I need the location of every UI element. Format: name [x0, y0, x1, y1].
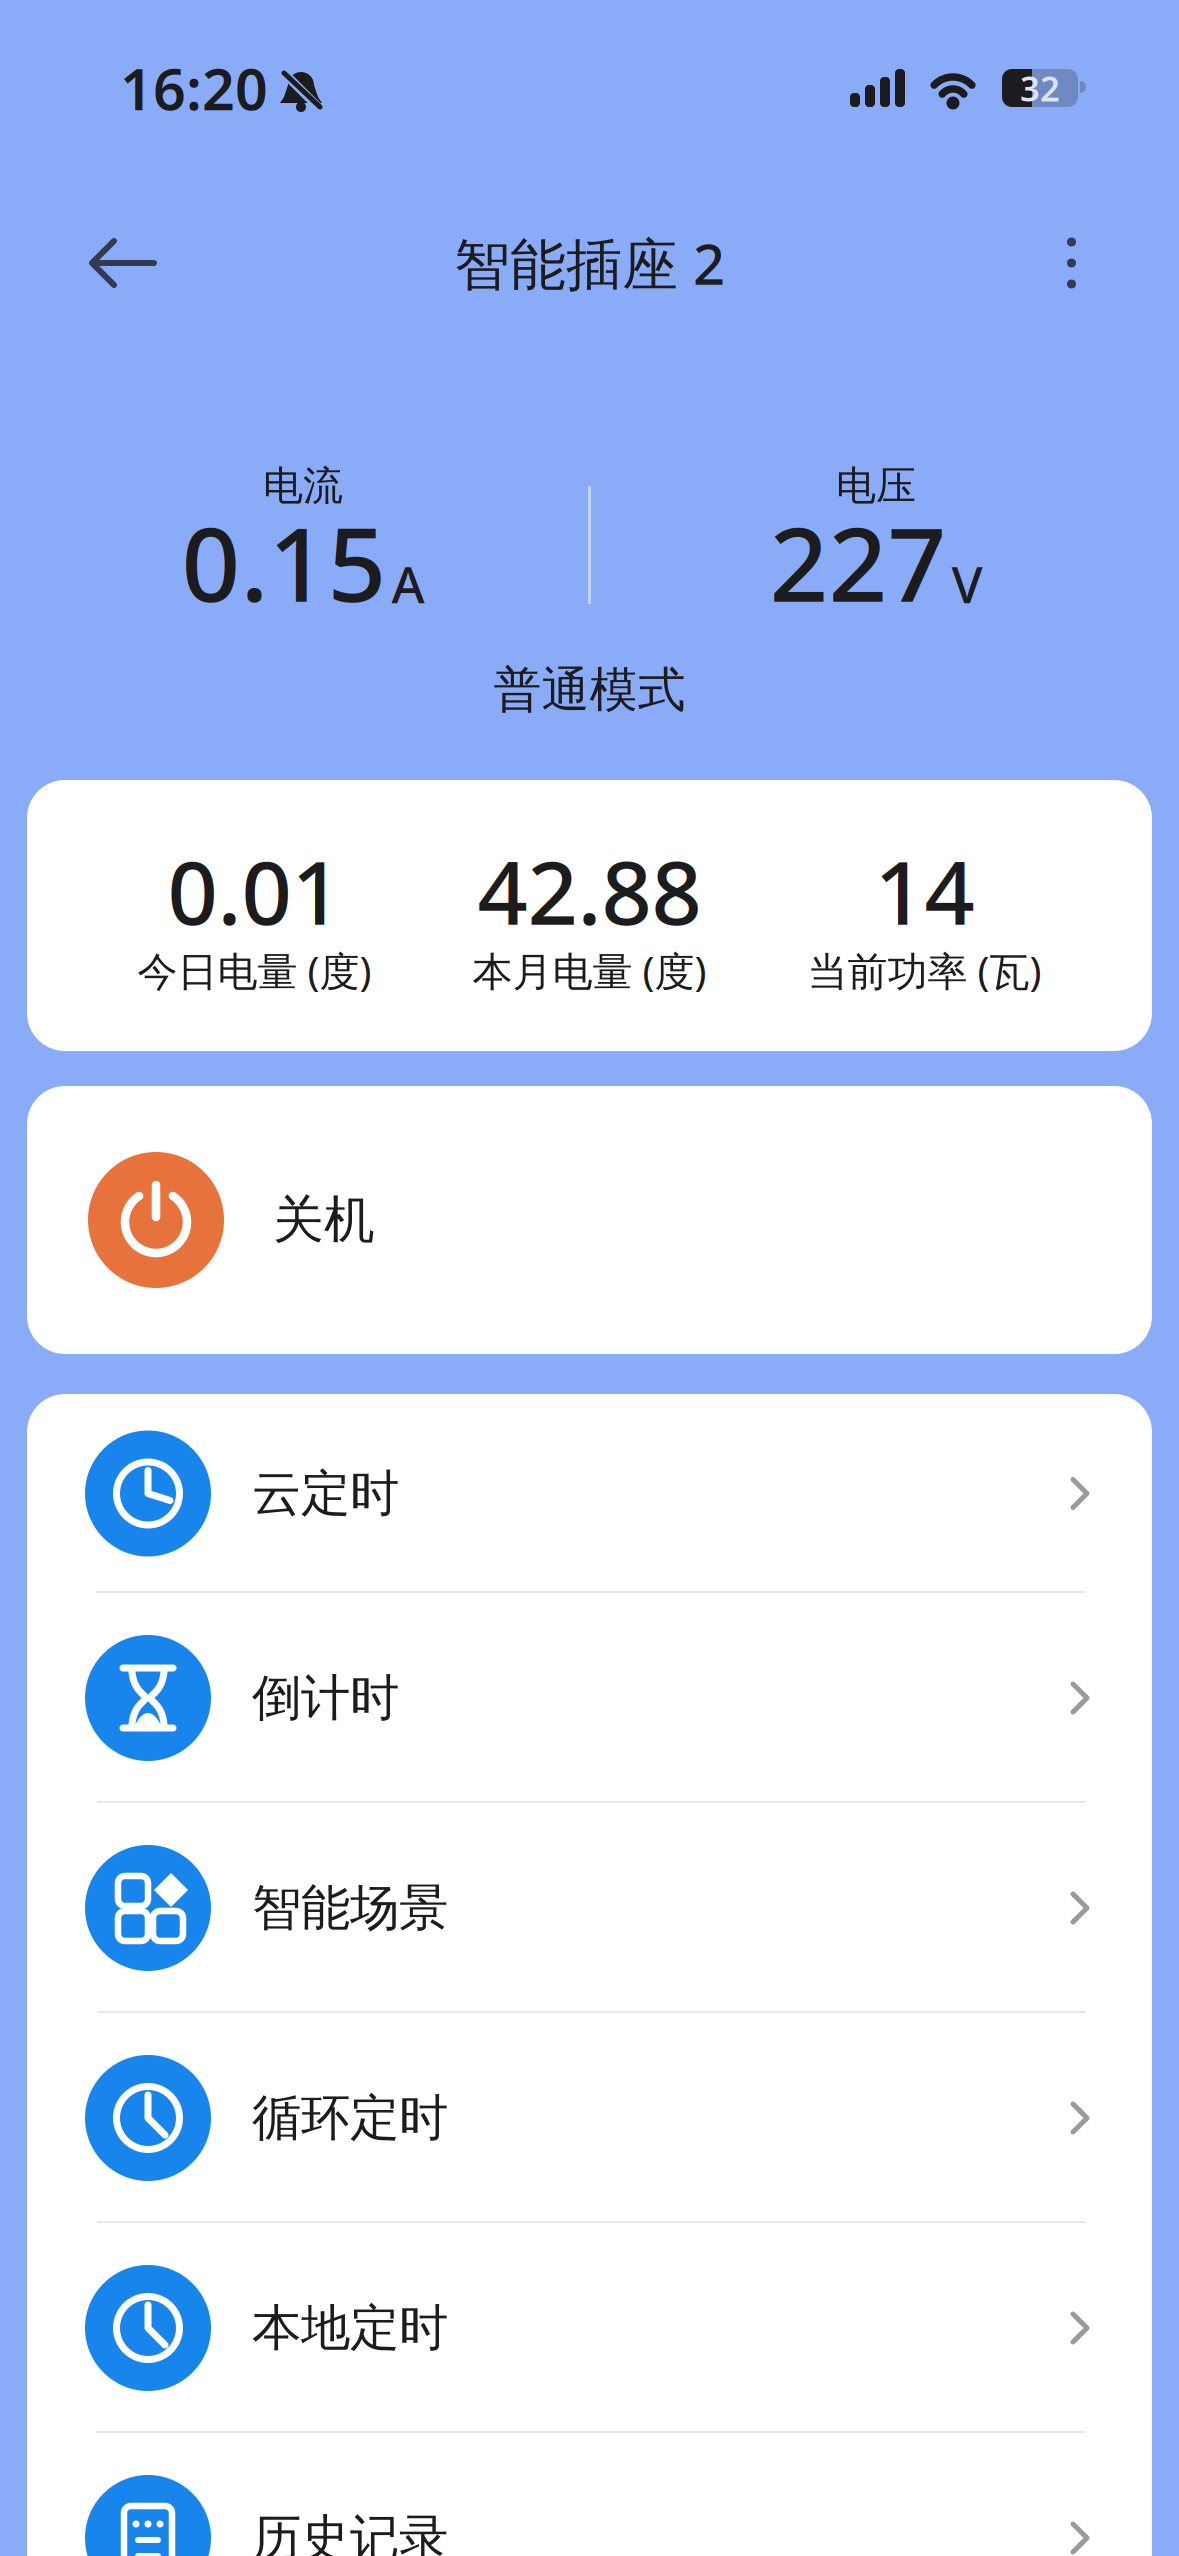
button[interactable]: More [1067, 237, 1179, 288]
staticText: 电流 [263, 461, 343, 510]
staticText: 227 [769, 494, 946, 630]
staticText: 42.88 [477, 832, 701, 949]
button[interactable]: 历史记录 [27, 2433, 1152, 2556]
button[interactable]: 智能场景 [27, 1803, 1152, 2013]
staticText: 云定时 [252, 1463, 399, 1524]
staticText: 32 [1020, 65, 1060, 111]
staticText: 循环定时 [252, 2088, 448, 2148]
staticText: V [951, 550, 982, 617]
staticText: 0.15 [181, 494, 386, 630]
button[interactable]: Back [0, 235, 156, 291]
staticText: 倒计时 [252, 1668, 399, 1728]
staticText: 14 [874, 832, 974, 949]
staticText: 智能插座 2 [454, 226, 725, 300]
button[interactable]: 关机 [27, 1086, 1152, 1354]
staticText: 关机 [273, 1189, 375, 1251]
staticText: A [391, 550, 424, 617]
button[interactable]: 倒计时 [27, 1593, 1152, 1803]
staticText: 本地定时 [252, 2298, 448, 2358]
staticText: 普通模式 [493, 660, 685, 719]
staticText: 历史记录 [252, 2508, 448, 2556]
staticText: 16:20 [120, 50, 268, 126]
staticText: 智能场景 [252, 1878, 448, 1938]
staticText: 电压 [836, 461, 916, 510]
staticText: 今日电量 (度) [137, 944, 371, 997]
button[interactable]: 循环定时 [27, 2013, 1152, 2223]
staticText: 本月电量 (度) [472, 944, 706, 997]
button[interactable]: 云定时 [27, 1394, 1152, 1593]
staticText: 当前功率 (瓦) [807, 944, 1041, 997]
staticText: 0.01 [167, 832, 341, 949]
button[interactable]: 本地定时 [27, 2223, 1152, 2433]
